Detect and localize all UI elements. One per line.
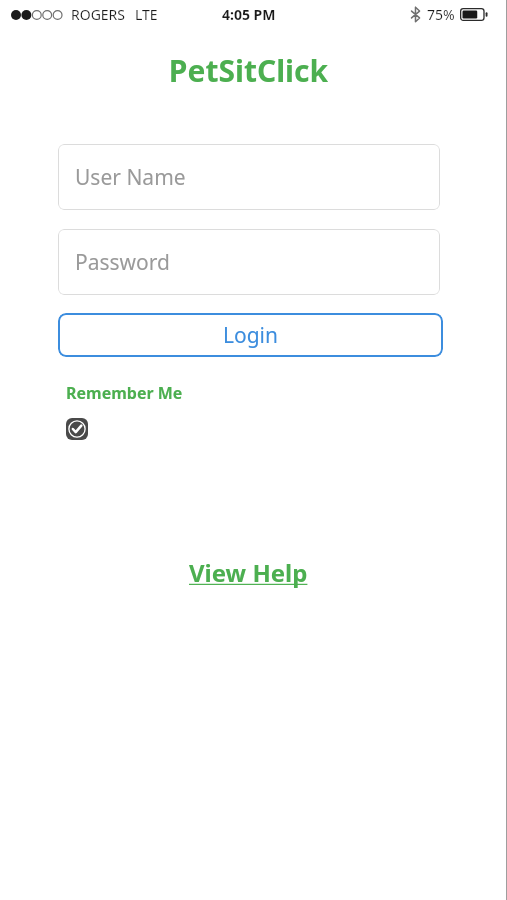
- staticText: Password: [75, 248, 170, 277]
- staticText: Remember Me: [66, 382, 183, 404]
- staticText: 75%: [427, 5, 455, 24]
- staticText: LTE: [135, 5, 158, 24]
- staticText: View Help: [189, 556, 308, 589]
- staticText: Login: [223, 321, 279, 350]
- button[interactable]: Remember Me: [58, 382, 191, 444]
- button[interactable]: User Name: [58, 144, 440, 210]
- button[interactable]: View Help: [181, 554, 316, 591]
- staticText: 4:05 PM: [222, 5, 276, 24]
- button[interactable]: Password: [58, 229, 440, 295]
- staticText: PetSitClick: [0, 50, 497, 91]
- button[interactable]: Remember Me checkbox, checked: [66, 418, 88, 440]
- staticText: ROGERS: [71, 5, 126, 24]
- button[interactable]: Login: [58, 313, 443, 357]
- staticText: User Name: [75, 163, 186, 192]
